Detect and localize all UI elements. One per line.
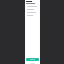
button[interactable] [26, 5, 39, 57]
button[interactable]: Continue [26, 58, 39, 61]
